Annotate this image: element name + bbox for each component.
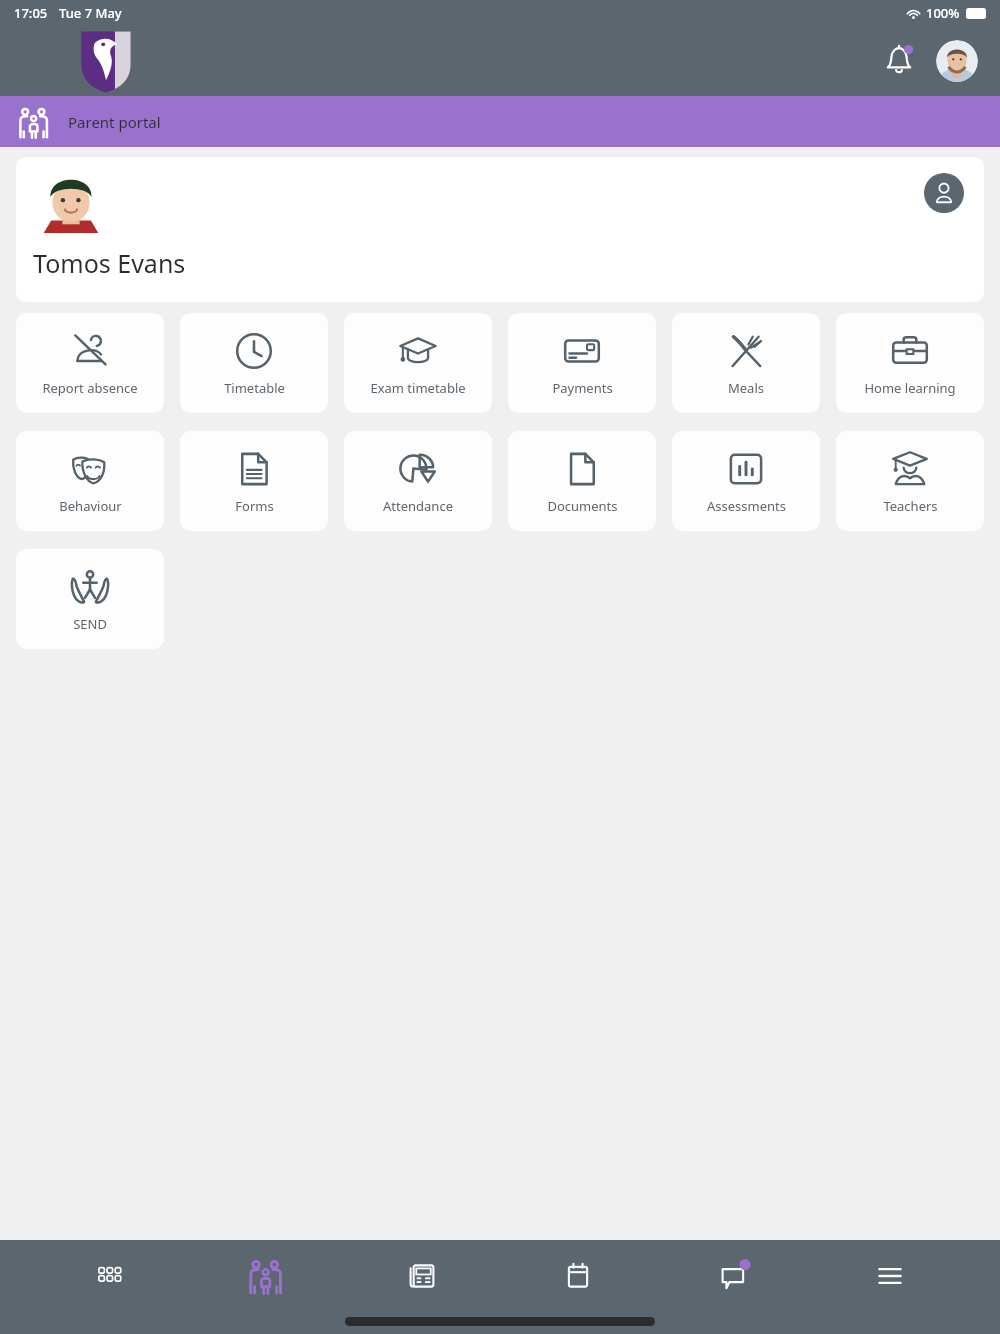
staticText: Documents: [547, 497, 618, 515]
staticText: 100%: [926, 4, 960, 22]
staticText: SEND: [73, 615, 107, 633]
staticText: Tomos Evans: [33, 246, 186, 280]
staticText: Meals: [728, 379, 764, 397]
staticText: Tue 7 May: [59, 4, 122, 22]
staticText: Report absence: [42, 379, 138, 397]
button[interactable]: Report absence: [16, 313, 164, 413]
button[interactable]: Notifications: [876, 38, 922, 84]
staticText: Exam timetable: [370, 379, 466, 397]
button[interactable]: Payments: [508, 313, 656, 413]
staticText: 17:05: [14, 4, 48, 22]
button[interactable]: Timetable: [180, 313, 328, 413]
button[interactable]: Behaviour: [16, 431, 164, 531]
staticText: Parent portal: [68, 112, 161, 132]
button[interactable]: Forms: [180, 431, 328, 531]
staticText: Teachers: [883, 497, 938, 515]
button[interactable]: Exam timetable: [344, 313, 492, 413]
button[interactable]: Teachers: [836, 431, 984, 531]
button[interactable]: Menu: [844, 1244, 936, 1308]
staticText: Forms: [235, 497, 274, 515]
staticText: Timetable: [224, 379, 285, 397]
button[interactable]: Documents: [508, 431, 656, 531]
staticText: Behaviour: [59, 497, 122, 515]
staticText: Attendance: [383, 497, 453, 515]
staticText: Assessments: [707, 497, 786, 515]
button[interactable]: SEND: [16, 549, 164, 649]
button[interactable]: Profile: [936, 40, 978, 82]
staticText: Home learning: [864, 379, 956, 397]
button[interactable]: Home learning: [836, 313, 984, 413]
button[interactable]: Calendar: [532, 1244, 624, 1308]
button[interactable]: Messages: [688, 1244, 780, 1308]
staticText: Payments: [552, 379, 613, 397]
button[interactable]: Meals: [672, 313, 820, 413]
button[interactable]: Assessments: [672, 431, 820, 531]
button[interactable]: News: [376, 1244, 468, 1308]
button[interactable]: Switch student: [16, 157, 984, 302]
button[interactable]: Parent portal: [0, 96, 1000, 147]
button[interactable]: Switch student: [924, 173, 964, 213]
button[interactable]: Parent portal: [220, 1244, 312, 1308]
button[interactable]: Apps: [64, 1244, 156, 1308]
button[interactable]: Attendance: [344, 431, 492, 531]
